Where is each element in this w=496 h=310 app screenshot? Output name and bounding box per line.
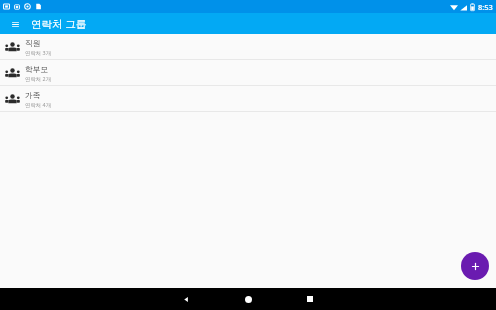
button[interactable]: 학부모	[0, 60, 496, 85]
staticText: 연락처 그룹	[31, 17, 87, 31]
staticText: 학부모	[25, 64, 49, 74]
button[interactable]: 가족	[0, 86, 496, 111]
staticText: 가족	[25, 90, 41, 100]
button[interactable]: Back	[176, 289, 196, 309]
button[interactable]: Open navigation drawer	[6, 15, 24, 33]
button[interactable]: Home	[238, 289, 258, 309]
staticText: 8:53	[478, 2, 493, 12]
button[interactable]: Add group	[461, 252, 489, 280]
staticText: 연락처 2개	[25, 75, 52, 82]
staticText: 직원	[25, 38, 41, 48]
button[interactable]: Recent apps	[300, 289, 320, 309]
staticText: 연락처 3개	[25, 49, 52, 56]
button[interactable]: 직원	[0, 34, 496, 59]
staticText: 연락처 4개	[25, 101, 52, 108]
